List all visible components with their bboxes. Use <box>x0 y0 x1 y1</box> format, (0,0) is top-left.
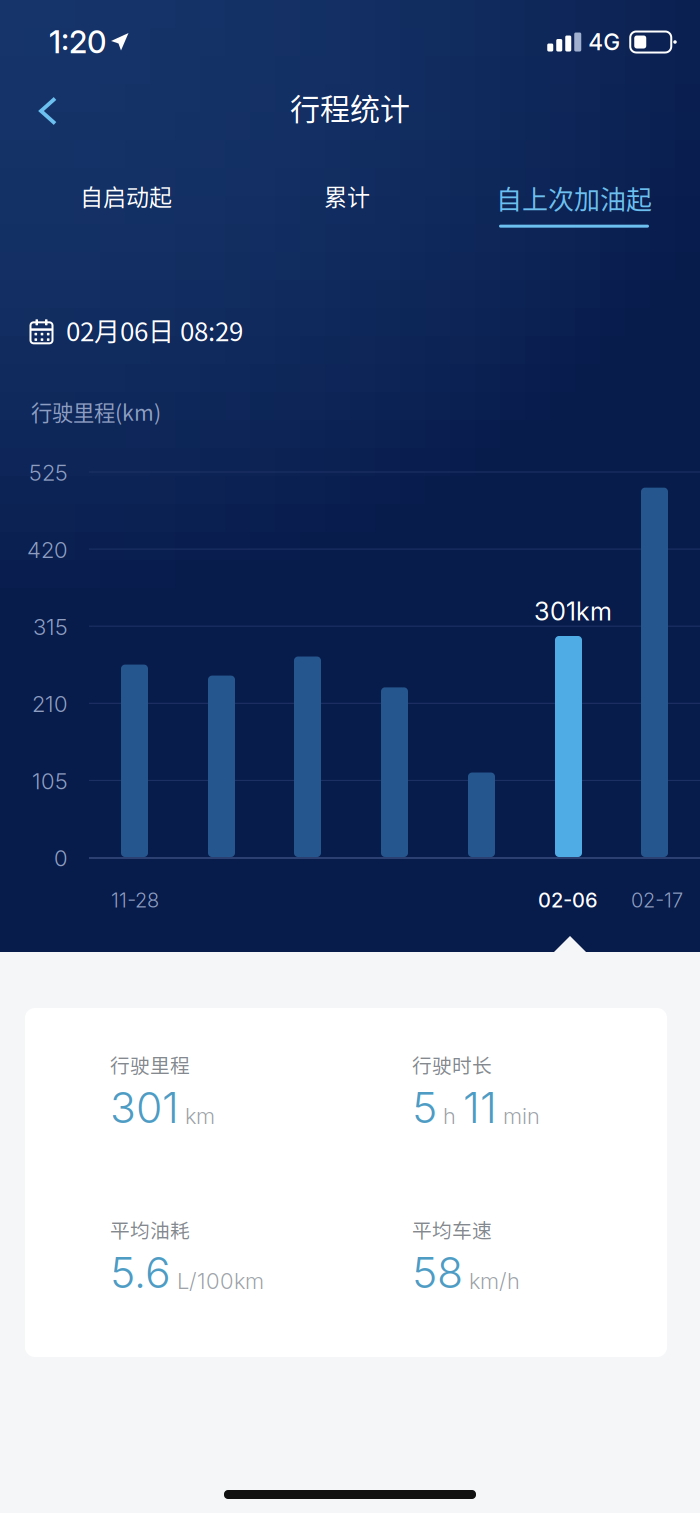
staticText: 自启动起 <box>80 179 172 212</box>
staticText: 4G <box>588 28 620 56</box>
staticText: 自上次加油起 <box>496 179 652 217</box>
button[interactable]: Back <box>18 77 78 137</box>
staticText: 525 <box>29 459 68 486</box>
staticText: 301km <box>534 596 612 627</box>
staticText: min <box>503 1103 540 1129</box>
staticText: 0 <box>54 845 68 872</box>
staticText: 02-06 <box>538 888 598 912</box>
staticText: 5.6 <box>110 1247 171 1298</box>
staticText: 105 <box>32 768 68 794</box>
staticText: 11 <box>463 1082 497 1133</box>
staticText: 行驶里程 <box>110 1050 190 1079</box>
staticText: 02-17 <box>631 888 683 912</box>
staticText: 行程统计 <box>290 85 410 129</box>
staticText: km <box>185 1103 215 1129</box>
button[interactable]: 自启动起 <box>26 175 226 227</box>
staticText: 行驶里程(km) <box>31 396 161 427</box>
staticText: 420 <box>27 537 68 563</box>
staticText: 5 <box>412 1082 437 1133</box>
staticText: 11-28 <box>111 888 159 912</box>
staticText: 平均车速 <box>412 1215 492 1244</box>
staticText: 1:20 <box>49 23 106 60</box>
staticText: h <box>443 1103 456 1129</box>
staticText: 301 <box>110 1082 179 1133</box>
staticText: 平均油耗 <box>110 1215 190 1244</box>
staticText: 315 <box>33 614 68 640</box>
staticText: 58 <box>412 1247 463 1298</box>
staticText: km/h <box>469 1268 520 1294</box>
staticText: 累计 <box>324 179 370 212</box>
staticText: L/100km <box>177 1268 264 1294</box>
button[interactable]: 累计 <box>247 175 447 227</box>
staticText: 02月06日 08:29 <box>66 311 243 349</box>
staticText: 210 <box>32 691 68 717</box>
staticText: 行驶时长 <box>412 1050 492 1079</box>
button[interactable]: 自上次加油起 <box>474 175 674 232</box>
